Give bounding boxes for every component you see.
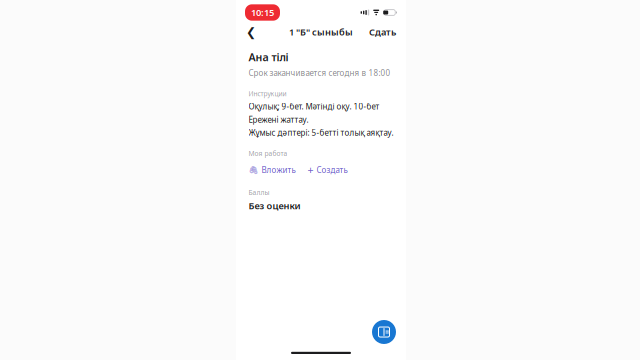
staticText: Ережені жаттау.: [248, 114, 308, 125]
staticText: Моя работа: [248, 149, 287, 158]
button[interactable]: Back: [240, 21, 262, 43]
staticText: 🖇: [248, 165, 258, 174]
staticText: Создать: [316, 165, 347, 175]
staticText: Инструкции: [248, 89, 286, 98]
staticText: ❮: [246, 25, 256, 39]
staticText: 1 "Б" сыныбы: [289, 26, 353, 38]
staticText: 10:15: [251, 6, 274, 19]
button[interactable]: Сдать: [363, 21, 402, 43]
staticText: Оқулық; 9-бет. Мәтінді оқу. 10-бет: [248, 101, 379, 112]
staticText: +: [307, 163, 313, 177]
staticText: Ана тілі: [248, 50, 288, 64]
staticText: Без оценки: [248, 199, 300, 212]
staticText: Жұмыс дәптері: 5-бетті толық аяқтау.: [248, 127, 393, 138]
button[interactable]: +: [307, 161, 347, 179]
staticText: Вложить: [261, 165, 295, 175]
button[interactable]: Open reader: [372, 320, 396, 344]
button[interactable]: 🖇: [248, 163, 295, 177]
staticText: Баллы: [248, 188, 269, 197]
staticText: Сдать: [369, 26, 396, 38]
staticText: Срок заканчивается сегодня в 18:00: [248, 68, 390, 78]
